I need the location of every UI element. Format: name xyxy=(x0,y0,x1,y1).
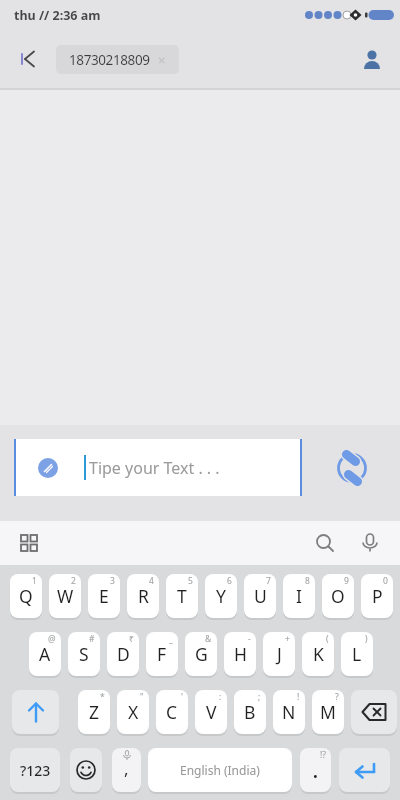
staticText: O xyxy=(331,584,345,608)
button[interactable]: X xyxy=(117,690,149,734)
staticText: N xyxy=(282,700,296,724)
button[interactable] xyxy=(339,748,390,792)
staticText: _ xyxy=(169,633,173,645)
staticText: F xyxy=(157,642,167,666)
staticText: 9 xyxy=(344,575,349,587)
button[interactable]: V xyxy=(195,690,227,734)
staticText: E xyxy=(99,584,109,608)
button[interactable] xyxy=(70,748,102,792)
staticText: " xyxy=(140,691,144,703)
button[interactable]: S xyxy=(68,632,100,676)
staticText: W xyxy=(57,584,74,608)
staticText: V xyxy=(206,700,217,724)
button[interactable]: . xyxy=(300,748,331,792)
staticText: ?123 xyxy=(20,761,51,780)
button[interactable]: K xyxy=(302,632,334,676)
staticText: ? xyxy=(335,691,339,703)
staticText: ) xyxy=(365,633,368,645)
staticText: Z xyxy=(89,700,100,724)
button[interactable]: T xyxy=(166,574,198,618)
staticText: # xyxy=(89,633,95,645)
staticText: K xyxy=(313,642,324,666)
button[interactable]: P xyxy=(361,574,393,618)
staticText: 8 xyxy=(305,575,310,587)
button[interactable]: N xyxy=(273,690,305,734)
button[interactable]: A xyxy=(29,632,61,676)
staticText: 2 xyxy=(71,575,76,587)
staticText: . xyxy=(313,760,318,783)
button[interactable]: E xyxy=(88,574,120,618)
button[interactable]: Z xyxy=(78,690,110,734)
staticText: R xyxy=(138,584,149,608)
button[interactable]: Y xyxy=(205,574,237,618)
button[interactable] xyxy=(20,50,38,68)
staticText: U xyxy=(254,584,267,608)
staticText: @ xyxy=(48,633,56,645)
staticText: × xyxy=(158,51,166,69)
button[interactable]: 18730218809 xyxy=(56,45,179,74)
button[interactable] xyxy=(20,534,38,552)
button[interactable]: English (India) xyxy=(148,748,292,792)
button[interactable]: ?123 xyxy=(10,748,60,792)
button[interactable] xyxy=(12,690,59,734)
button[interactable] xyxy=(351,690,397,734)
button[interactable]: M xyxy=(312,690,344,734)
button[interactable] xyxy=(360,533,380,553)
button[interactable] xyxy=(361,48,383,70)
staticText: Y xyxy=(216,584,226,608)
button[interactable]: O xyxy=(322,574,354,618)
button[interactable]: D xyxy=(107,632,139,676)
staticText: : xyxy=(219,691,222,703)
button[interactable]: C xyxy=(156,690,188,734)
button[interactable] xyxy=(333,449,371,487)
button[interactable]: J xyxy=(263,632,295,676)
button[interactable]: U xyxy=(244,574,276,618)
button[interactable]: , xyxy=(112,748,141,792)
staticText: S xyxy=(79,642,89,666)
staticText: M xyxy=(320,700,336,724)
button[interactable]: B xyxy=(234,690,266,734)
staticText: 3 xyxy=(110,575,115,587)
button[interactable]: G xyxy=(185,632,217,676)
staticText: H xyxy=(234,642,247,666)
staticText: 4 xyxy=(149,575,154,587)
button[interactable]: H xyxy=(224,632,256,676)
staticText: G xyxy=(195,642,208,666)
staticText: , xyxy=(124,757,129,780)
staticText: 7 xyxy=(266,575,271,587)
staticText: + xyxy=(285,633,290,645)
button[interactable]: W xyxy=(49,574,81,618)
staticText: English (India) xyxy=(180,762,260,778)
staticText: T xyxy=(177,584,187,608)
staticText: I xyxy=(296,584,302,608)
staticText: P xyxy=(372,584,383,608)
button[interactable] xyxy=(315,533,335,553)
staticText: 5 xyxy=(188,575,193,587)
staticText: & xyxy=(205,633,212,645)
staticText: Tipe your Text . . . xyxy=(89,457,220,479)
staticText: L xyxy=(352,642,362,666)
staticText: Q xyxy=(19,584,33,608)
staticText: 18730218809 xyxy=(69,51,150,69)
button[interactable]: R xyxy=(127,574,159,618)
staticText: * xyxy=(100,691,105,703)
staticText: C xyxy=(166,700,178,724)
staticText: 6 xyxy=(227,575,232,587)
button[interactable]: L xyxy=(341,632,373,676)
staticText: 1 xyxy=(32,575,37,587)
button[interactable]: F xyxy=(146,632,178,676)
staticText: ; xyxy=(258,691,261,703)
staticText: ! xyxy=(297,691,300,703)
staticText: B xyxy=(244,700,256,724)
staticText: - xyxy=(248,633,251,645)
staticText: X xyxy=(128,700,139,724)
staticText: J xyxy=(277,642,282,666)
button[interactable]: I xyxy=(283,574,315,618)
button[interactable]: Q xyxy=(10,574,42,618)
staticText: D xyxy=(117,642,130,666)
staticText: ₹ xyxy=(129,633,134,645)
staticText: ( xyxy=(326,633,329,645)
staticText: thu // 2:36 am xyxy=(14,7,101,24)
staticText: ' xyxy=(181,691,183,703)
button[interactable]: Tipe your Text . . . xyxy=(14,439,302,496)
